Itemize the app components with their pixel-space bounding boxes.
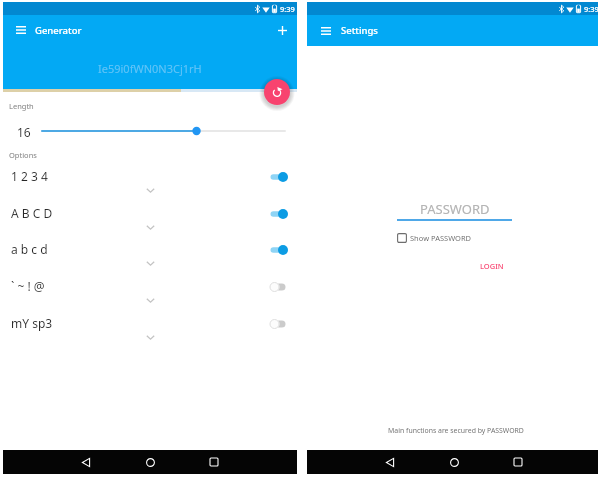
staticText: mY sp3 <box>11 315 53 331</box>
staticText: Main functions are secured by PASSWORD <box>309 426 598 435</box>
staticText: 1 2 3 4 <box>11 168 48 184</box>
staticText: Show PASSWORD <box>410 233 472 243</box>
button[interactable]: a b c d <box>3 242 297 278</box>
button[interactable]: Add <box>273 21 291 39</box>
button[interactable]: Back <box>378 450 402 474</box>
button[interactable]: Show PASSWORD <box>397 233 472 243</box>
staticText: 9:39 <box>280 4 295 14</box>
button[interactable]: 1 2 3 4 <box>3 169 297 205</box>
button[interactable]: Regenerate <box>264 79 290 105</box>
staticText: PASSWORD <box>420 200 490 218</box>
staticText: Ie59i0fWN0N3Cj1rH <box>98 61 202 76</box>
button[interactable]: Home <box>138 450 162 474</box>
staticText: Settings <box>341 24 378 37</box>
button[interactable]: Recents <box>506 450 530 474</box>
button[interactable]: Menu <box>12 21 30 39</box>
staticText: Options <box>9 150 37 160</box>
staticText: LOGIN <box>480 261 504 271</box>
button[interactable]: LOGIN <box>478 259 506 273</box>
staticText: 16 <box>17 124 31 140</box>
button[interactable]: A B C D <box>3 206 297 242</box>
staticText: a b c d <box>11 241 48 257</box>
button[interactable]: mY sp3 <box>3 316 297 352</box>
button[interactable]: ` ~ ! @ <box>3 279 297 315</box>
button[interactable]: Recents <box>202 450 226 474</box>
staticText: Length <box>9 101 34 111</box>
staticText: A B C D <box>11 205 53 221</box>
staticText: ` ~ ! @ <box>11 278 45 294</box>
staticText: 9:39 <box>584 4 598 14</box>
button[interactable]: Back <box>74 450 98 474</box>
button[interactable]: Home <box>442 450 466 474</box>
button[interactable]: Menu <box>317 22 335 40</box>
staticText: Generator <box>35 24 82 37</box>
